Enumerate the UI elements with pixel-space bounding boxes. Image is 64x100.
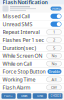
staticText: TIMER: [21, 94, 28, 98]
staticText: While Screen ON: [2, 52, 42, 59]
staticText: Working Time: [2, 76, 35, 83]
staticText: No: [51, 53, 56, 58]
button[interactable]: TIMER: [17, 93, 31, 99]
staticText: Unread SMS: [2, 21, 32, 28]
staticText: Enable: [49, 69, 60, 74]
staticText: All: [51, 77, 56, 82]
staticText: Flash Alarm: [2, 84, 30, 91]
button[interactable]: TUNE: [33, 93, 47, 99]
button[interactable]: Duration(sec): [0, 44, 64, 52]
button[interactable]: Unread SMS: [0, 20, 64, 28]
staticText: INSTALL: [51, 7, 60, 10]
staticText: Duration(sec): [2, 44, 36, 51]
staticText: CHOICE: [50, 94, 60, 98]
staticText: Missed Call: [2, 13, 29, 20]
button[interactable]: Flashes Per 1 sec: [0, 36, 64, 44]
button[interactable]: Flash Alarm: [0, 84, 64, 91]
button[interactable]: Force Stop Button: [0, 68, 64, 76]
staticText: Flash Notification: [2, 0, 47, 6]
button[interactable]: While Screen ON: [0, 52, 64, 60]
staticText: PLUS +: [4, 94, 13, 98]
staticText: 2: [53, 37, 55, 43]
staticText: TUNE: [37, 94, 43, 98]
staticText: No: [51, 61, 56, 66]
button[interactable]: While on Call: [0, 60, 64, 68]
staticText: Force Stop Button: [2, 68, 45, 75]
staticText: Off: [51, 85, 57, 90]
button[interactable]: Working Time: [0, 76, 64, 84]
button[interactable]: Repeat Interval: [0, 28, 64, 36]
staticText: 1: [53, 29, 55, 35]
button[interactable]: CHOICE: [48, 93, 62, 99]
button[interactable]: PLUS +: [1, 93, 16, 99]
staticText: While on Call: [2, 60, 31, 67]
staticText: Repeat Interval: [2, 28, 39, 36]
staticText: 5: [53, 45, 55, 50]
staticText: Flashes Per 1 sec: [2, 36, 44, 43]
button[interactable]: Missed Call: [0, 12, 64, 20]
